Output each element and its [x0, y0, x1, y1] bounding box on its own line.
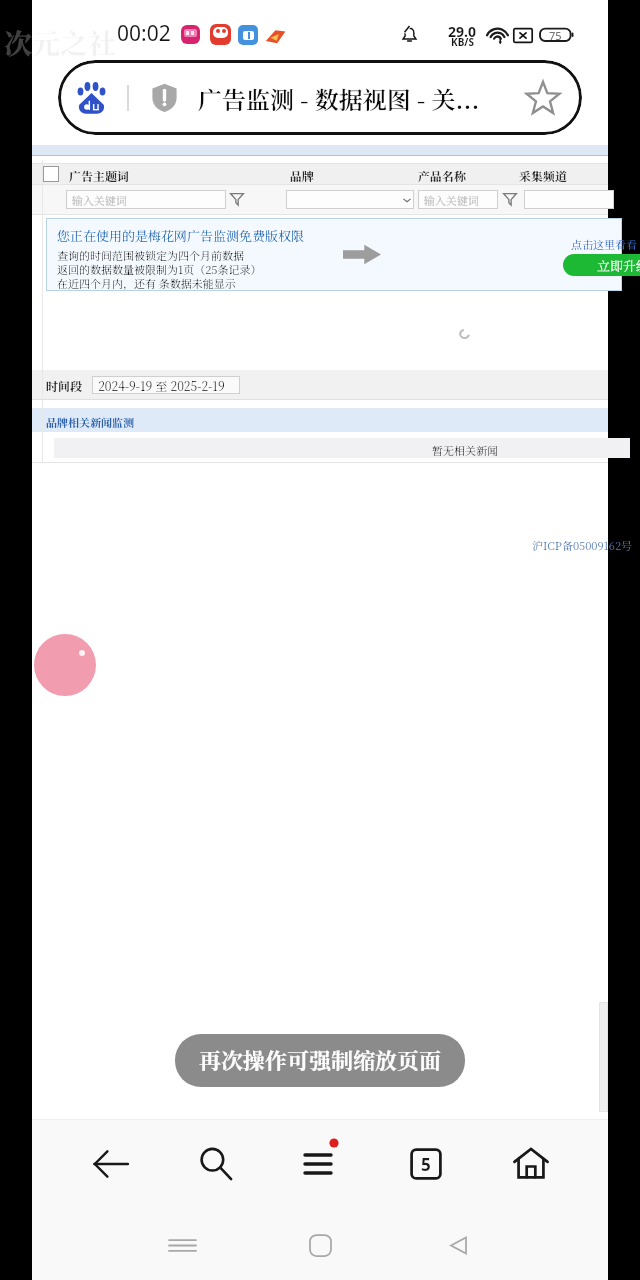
- staticText: 返回的数据数量被限制为1页（25条记录）: [57, 261, 262, 277]
- button[interactable]: Back: [430, 1217, 486, 1273]
- staticText: 暂无相关新闻: [432, 442, 498, 458]
- staticText: 输入关键词: [66, 192, 127, 208]
- button[interactable]: Home: [497, 1130, 565, 1198]
- staticText: 产品名称: [418, 167, 467, 184]
- staticText: 立即升级: [597, 256, 640, 275]
- button[interactable]: Assistive touch: [34, 634, 96, 696]
- staticText: 次元之社: [4, 22, 117, 62]
- button[interactable]: 广告监测 - 数据视图 - 关...: [58, 60, 582, 135]
- button[interactable]: 立即升级: [563, 254, 640, 276]
- staticText: 时间段: [46, 377, 83, 394]
- staticText: 采集频道: [519, 167, 568, 184]
- staticText: 输入关键词: [418, 192, 479, 208]
- staticText: 品牌相关新闻监测: [46, 414, 134, 430]
- staticText: 5: [421, 1153, 431, 1176]
- staticText: 沪ICP备05009162号: [532, 537, 633, 553]
- staticText: 在近四个月内，还有 条数据未能显示: [57, 275, 236, 291]
- staticText: KB/S: [451, 35, 474, 49]
- button[interactable]: Home: [292, 1217, 348, 1273]
- staticText: 查询的时间范围被锁定为四个月前数据: [57, 247, 244, 263]
- staticText: 广告监测 - 数据视图 - 关...: [198, 81, 516, 115]
- staticText: 2024-9-19 至 2025-2-19: [92, 377, 225, 394]
- staticText: 再次操作可强制缩放页面: [199, 1044, 442, 1076]
- button[interactable]: Recents: [154, 1217, 210, 1273]
- staticText: 75: [549, 28, 562, 43]
- button[interactable]: Search: [182, 1130, 250, 1198]
- staticText: 广告主题词: [69, 167, 130, 184]
- staticText: 您正在使用的是梅花网广告监测免费版权限: [57, 226, 305, 245]
- staticText: 29.0: [448, 22, 476, 41]
- staticText: 品牌: [290, 167, 315, 184]
- staticText: 00:02: [117, 19, 171, 48]
- staticText: 次元之社: [4, 22, 117, 62]
- button[interactable]: Bookmark: [518, 73, 568, 123]
- button[interactable]: Menu: [287, 1130, 355, 1198]
- button[interactable]: Tabs: [392, 1130, 460, 1198]
- staticText: 点击这里看看: [571, 236, 637, 252]
- button[interactable]: Back: [77, 1130, 145, 1198]
